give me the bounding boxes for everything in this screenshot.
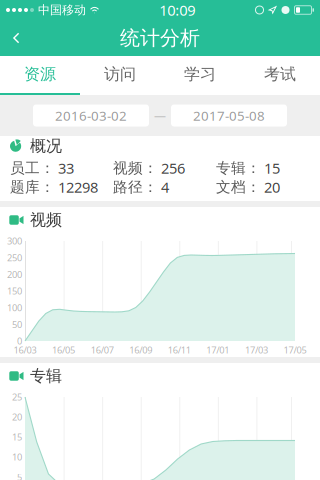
staticText: 题库： [10,178,55,196]
staticText: 0 [17,335,22,347]
button[interactable]: 资源 [0,56,80,95]
staticText: 33 [58,158,74,178]
staticText: 文档： [216,178,261,196]
staticText: 视频： [113,159,158,177]
staticText: 17/01 [206,344,229,356]
staticText: 10:09 [159,0,195,20]
staticText: 2016-03-02 [55,107,127,124]
staticText: 16/05 [52,344,75,356]
staticText: — [154,107,166,123]
button[interactable]: 学习 [160,56,240,95]
staticText: 考试 [264,64,296,84]
staticText: 路径： [113,178,158,196]
staticText: 16/07 [91,344,114,356]
staticText: 16/03 [13,344,36,356]
staticText: 12298 [58,177,98,197]
staticText: 256 [161,158,185,178]
staticText: 15 [264,158,280,178]
staticText: 250 [7,251,22,264]
button[interactable]: 2017-05-08 [171,104,287,126]
staticText: 专辑 [30,366,62,386]
staticText: 统计分析 [120,26,200,50]
staticText: 10 [12,451,22,463]
staticText: 中国移动 [38,3,86,17]
staticText: 16/09 [129,344,152,356]
staticText: 20 [264,177,280,197]
button[interactable]: 2016-03-02 [33,104,149,126]
staticText: 资源 [24,64,56,84]
staticText: 25 [12,391,22,403]
staticText: 17/05 [283,344,306,356]
staticText: 5 [17,471,22,480]
staticText: 员工： [10,159,55,177]
staticText: 150 [7,285,22,297]
staticText: 200 [7,268,22,280]
staticText: 15 [12,431,22,443]
staticText: 概况 [30,136,62,156]
button[interactable]: 访问 [80,56,160,95]
staticText: 50 [12,318,22,330]
staticText: 300 [7,235,22,247]
button[interactable]: Back [0,20,42,56]
staticText: 100 [7,301,22,314]
staticText: 学习 [184,64,216,84]
staticText: 20 [12,411,22,423]
staticText: 视频 [30,210,62,230]
staticText: 4 [161,177,169,197]
button[interactable]: 考试 [240,56,320,95]
staticText: 16/11 [168,344,191,356]
staticText: 17/03 [245,344,268,356]
staticText: 2017-05-08 [193,107,265,124]
staticText: 访问 [104,64,136,84]
staticText: 专辑： [216,159,261,177]
